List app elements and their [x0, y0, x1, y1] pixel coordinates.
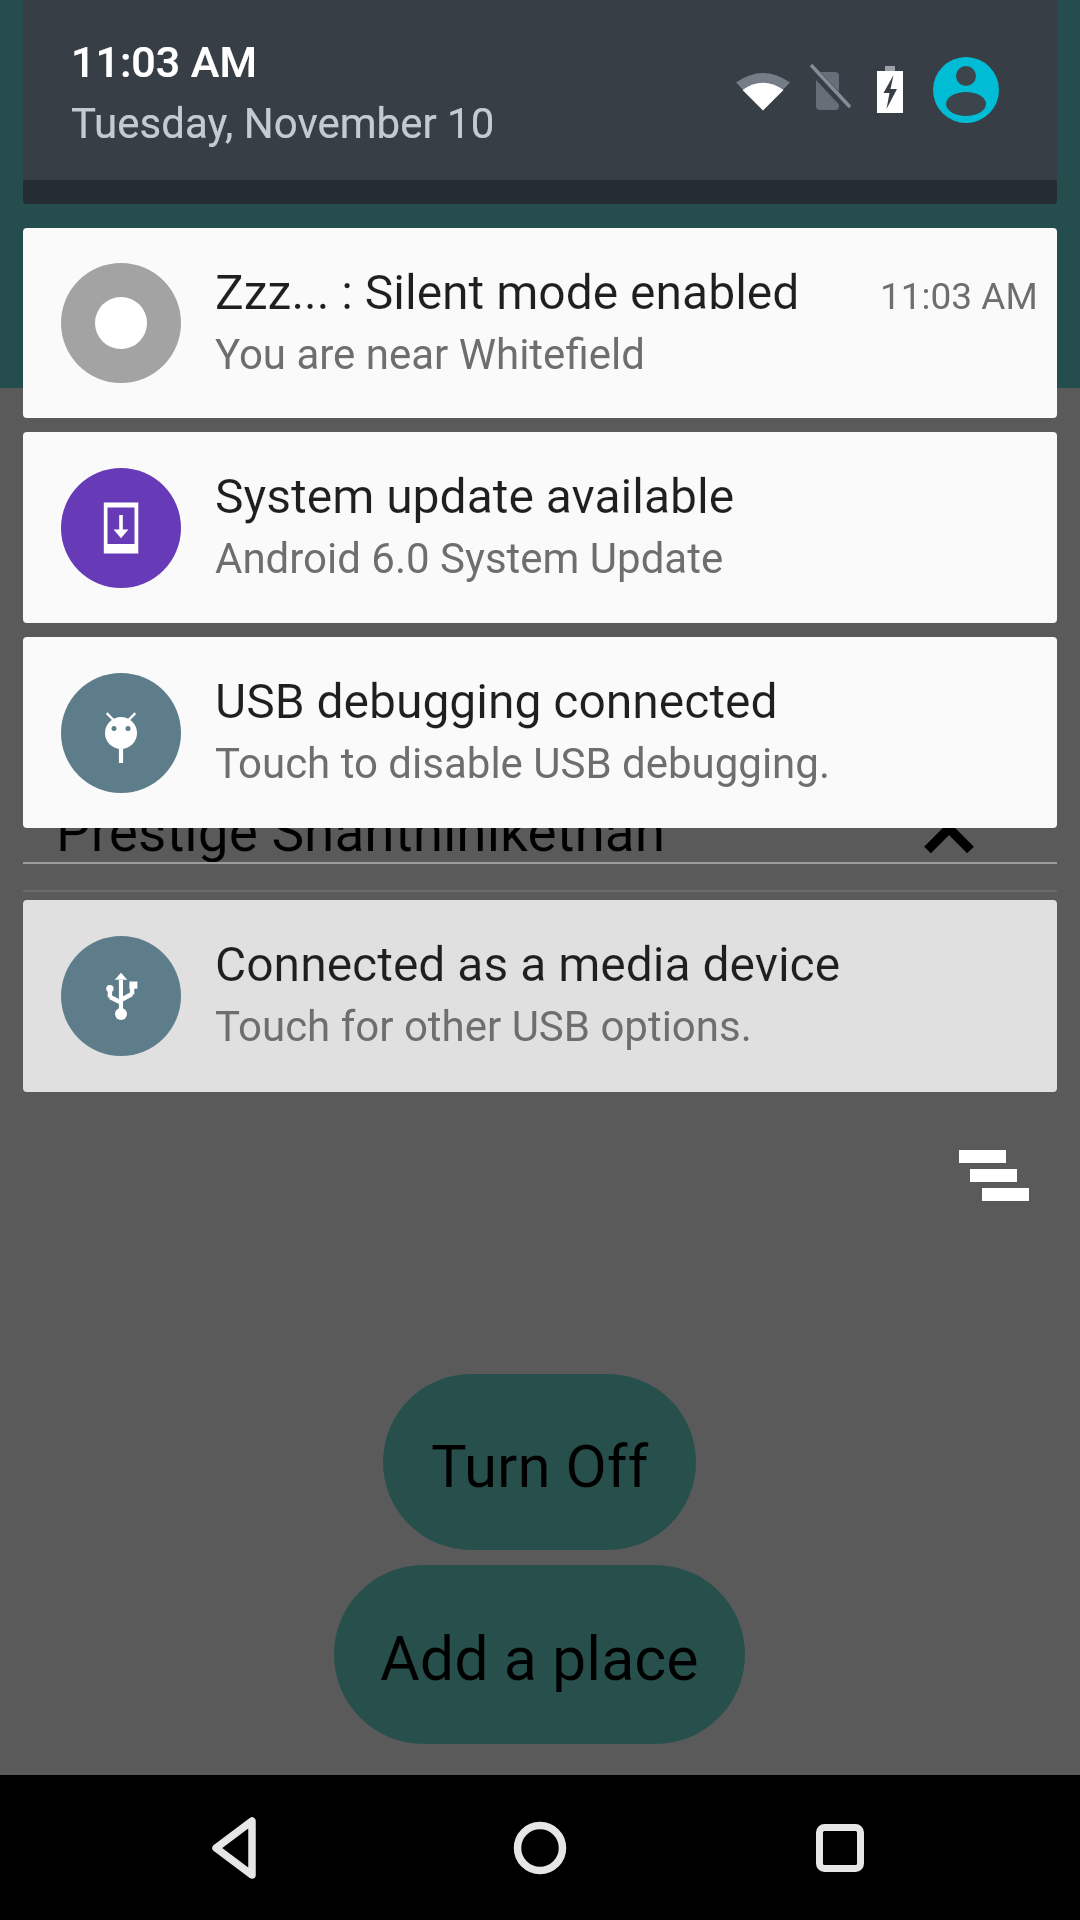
staticText: 11:03 AM	[880, 275, 1038, 318]
staticText: Zzz... : Silent mode enabled	[215, 264, 835, 320]
staticText: Tuesday, November 10	[71, 99, 495, 148]
button[interactable]: Add a place	[334, 1565, 745, 1744]
staticText: System update available	[215, 468, 1015, 524]
staticText: Add a place	[380, 1623, 699, 1694]
button[interactable]: System update available	[23, 432, 1057, 623]
button[interactable]: Back	[180, 1788, 300, 1908]
button[interactable]: Collapse	[891, 790, 1007, 906]
button[interactable]: User profile	[933, 57, 999, 123]
button[interactable]: Clear all notifications	[928, 1118, 1048, 1238]
button[interactable]: Zzz... : Silent mode enabled	[23, 228, 1057, 418]
staticText: Touch to disable USB debugging.	[215, 739, 1015, 788]
staticText: Turn Off	[431, 1431, 649, 1501]
staticText: Touch for other USB options.	[215, 1002, 1015, 1051]
button[interactable]: Recent apps	[780, 1788, 900, 1908]
staticText: Connected as a media device	[215, 936, 1015, 992]
button[interactable]: Turn Off	[383, 1374, 696, 1550]
staticText: Prestige Shanthinikethan	[56, 800, 666, 864]
staticText: 11:03 AM	[71, 37, 258, 87]
staticText: USB debugging connected	[215, 673, 1015, 729]
staticText: Android 6.0 System Update	[215, 534, 1015, 583]
staticText: You are near Whitefield	[215, 330, 1015, 379]
button[interactable]: Connected as a media device	[23, 900, 1057, 1092]
button[interactable]: USB debugging connected	[23, 637, 1057, 828]
button[interactable]: Home	[480, 1788, 600, 1908]
